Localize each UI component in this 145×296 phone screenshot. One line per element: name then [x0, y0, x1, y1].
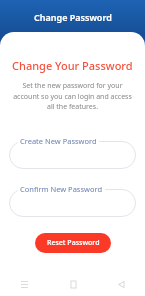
- button[interactable]: Confirm New Password: [9, 184, 136, 217]
- staticText: Reset Password: [47, 238, 100, 248]
- staticText: Change Your Password: [12, 58, 133, 73]
- button[interactable]: Back: [97, 272, 145, 296]
- staticText: Confirm New Password: [20, 184, 103, 194]
- staticText: Change Password: [34, 11, 112, 23]
- button[interactable]: Reset Password: [35, 233, 111, 253]
- button[interactable]: Home: [49, 272, 97, 296]
- button[interactable]: Create New Password: [9, 136, 136, 169]
- staticText: Set the new password for your account so…: [9, 81, 136, 111]
- button[interactable]: Recent apps: [0, 272, 49, 296]
- staticText: Create New Password: [20, 136, 97, 146]
